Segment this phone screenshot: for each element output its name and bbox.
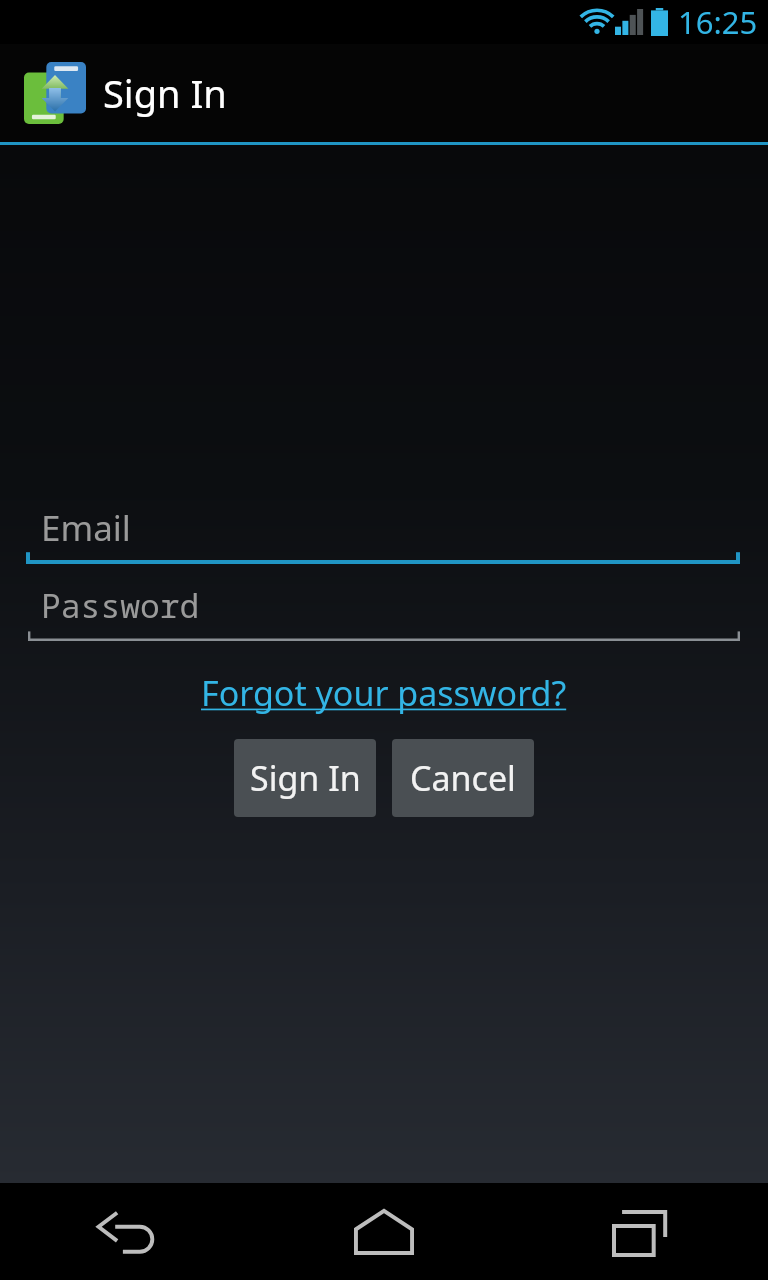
button[interactable]: Forgot your password? — [195, 668, 573, 718]
staticText: Email — [41, 504, 131, 552]
button[interactable]: Back — [0, 1183, 256, 1280]
staticText: Sign In — [250, 755, 361, 801]
button[interactable]: Email — [0, 498, 768, 564]
staticText: 16:25 — [678, 1, 758, 43]
button[interactable]: Cancel — [392, 739, 534, 817]
staticText: Cancel — [410, 755, 516, 801]
button[interactable]: Recent apps — [512, 1183, 768, 1280]
button[interactable]: Sign In — [234, 739, 376, 817]
staticText: Sign In — [103, 67, 227, 119]
button[interactable]: Password — [0, 576, 768, 641]
staticText: Forgot your password? — [201, 670, 567, 716]
staticText: Password — [41, 583, 200, 628]
button[interactable]: Home — [256, 1183, 512, 1280]
